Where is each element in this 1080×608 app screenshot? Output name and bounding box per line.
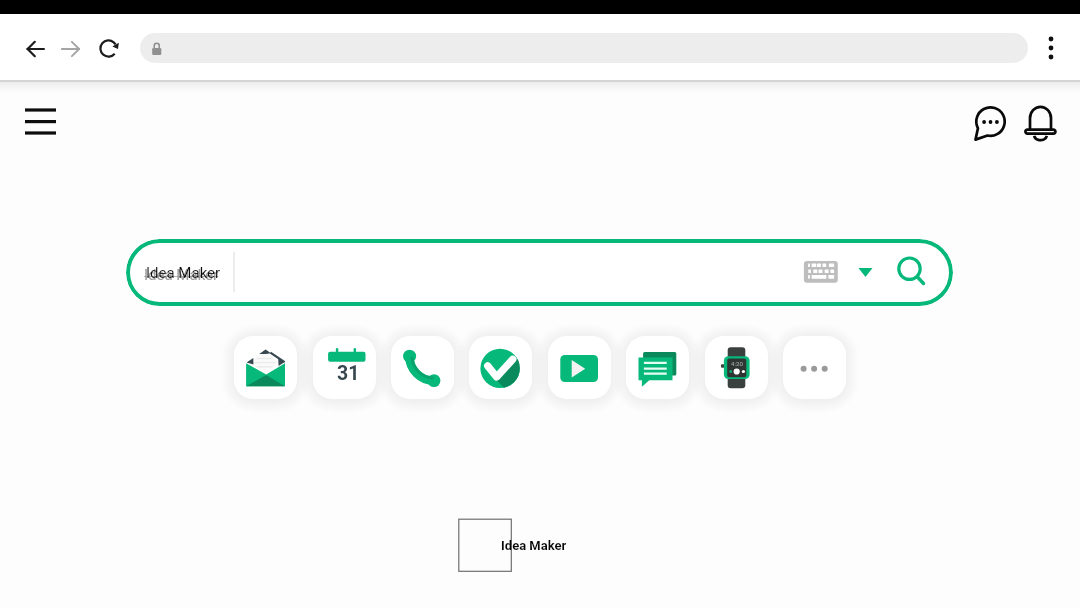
staticText: 31 — [337, 362, 360, 385]
button[interactable]: Keyboard — [800, 256, 842, 288]
button[interactable]: Messages — [970, 101, 1012, 143]
button[interactable]: Forward — [52, 31, 88, 67]
button[interactable]: Notifications — [1020, 101, 1062, 143]
button[interactable]: Tasks — [469, 336, 532, 399]
button[interactable]: Show suggestions — [852, 258, 880, 286]
staticText: Idea Maker — [501, 538, 567, 553]
button[interactable]: Back — [18, 31, 54, 67]
staticText: Idea Maker — [144, 266, 219, 284]
button[interactable]: Calendar — [313, 336, 376, 399]
button[interactable]: Mail — [234, 336, 297, 399]
button[interactable]: Menu — [17, 101, 63, 143]
button[interactable]: Phone — [391, 336, 454, 399]
button[interactable]: Watch — [705, 336, 768, 399]
staticText: 4:20 — [731, 360, 743, 367]
button[interactable]: Videos — [548, 336, 611, 399]
button[interactable]: Messages — [626, 336, 689, 399]
button[interactable]: More apps — [783, 336, 846, 399]
button[interactable]: Reload — [91, 31, 127, 67]
button[interactable]: More options — [1033, 30, 1069, 66]
button[interactable]: Search — [892, 252, 928, 288]
button[interactable]: Search field — [126, 239, 953, 306]
staticText: Idea Maker — [146, 264, 221, 282]
button[interactable]: Address bar — [140, 33, 1028, 63]
